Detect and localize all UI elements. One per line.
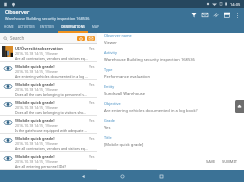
staticText: 2016-10-18 14:15, 1Viewer	[15, 105, 59, 110]
staticText: Viewer	[104, 40, 117, 46]
staticText: 2016-10-18 14:15, 1Viewer	[15, 123, 59, 128]
staticText: [Mobile quick grade]	[104, 142, 144, 148]
staticText: 2016-10-18 14:15, 1Viewer	[15, 159, 59, 164]
button[interactable]: [Mobile quick grade]	[0, 62, 97, 80]
staticText: Yes	[89, 82, 95, 87]
staticText: 14:05	[230, 2, 241, 7]
button[interactable]: OBSERVATIONS	[58, 21, 88, 33]
button[interactable]: Archive	[221, 9, 232, 20]
staticText: Are entering vehicles documented in a lo…	[104, 108, 198, 114]
button[interactable]: HOME	[0, 21, 17, 33]
staticText: Yes	[89, 46, 95, 51]
staticText: 2016-10-18 14:15, 1Viewer	[15, 141, 59, 146]
staticText: Warehouse Building security inspection 1…	[104, 57, 195, 63]
button[interactable]: ACTIVITIES	[17, 21, 35, 33]
staticText: Grade	[104, 118, 115, 123]
button[interactable]: Attachments	[210, 9, 221, 20]
button[interactable]: SAVE	[203, 157, 219, 166]
button[interactable]: MAP	[88, 21, 104, 33]
button[interactable]: ENTITIES	[35, 21, 58, 33]
staticText: Activity	[104, 50, 117, 55]
staticText: Are all contractors, vendors and visitor…	[15, 146, 88, 151]
staticText: UI/Översiktsobservation	[15, 46, 63, 51]
staticText: Are all entering personnel IDd?	[15, 164, 67, 169]
button[interactable]: [Mobile quick grade]	[0, 98, 97, 116]
button[interactable]: New message	[87, 36, 95, 41]
button[interactable]: [Mobile quick grade]	[0, 116, 97, 134]
staticText: 2016-10-18 14:15, 1Viewer	[15, 69, 59, 74]
staticText: 2016-10-18 14:15, 1Viewer	[15, 51, 59, 56]
button[interactable]: UI/Översiktsobservation	[0, 44, 97, 62]
staticText: [Mobile quick grade]	[15, 118, 55, 123]
staticText: Yes	[89, 136, 95, 141]
staticText: Does all the cars belonging to personnel…	[15, 92, 88, 97]
staticText: MAP	[92, 25, 100, 29]
staticText: Are entering vehicles documented in a lo…	[15, 74, 88, 79]
button[interactable]: [Mobile quick grade]	[0, 134, 97, 152]
staticText: [Mobile quick grade]	[15, 64, 55, 69]
staticText: [Mobile quick grade]	[15, 154, 55, 159]
button[interactable]: Filter	[188, 9, 199, 20]
staticText: 2016-10-18 14:15, 1Viewer	[15, 87, 59, 92]
staticText: OBSERVATIONS	[61, 25, 85, 29]
button[interactable]: Messages	[199, 9, 210, 20]
staticText: Objective	[104, 101, 121, 106]
button[interactable]: [Mobile quick grade]	[0, 80, 97, 98]
staticText: Yes	[89, 118, 95, 123]
button[interactable]: More options	[232, 10, 242, 20]
button[interactable]: Back	[64, 170, 103, 182]
staticText: Title	[104, 135, 112, 140]
staticText: Are all contractors, vendors and visitor…	[15, 56, 88, 61]
staticText: [Mobile quick grade]	[15, 100, 55, 105]
staticText: Search	[10, 35, 25, 41]
staticText: Yes	[104, 125, 111, 131]
button[interactable]: Voice search	[77, 36, 85, 41]
staticText: HOME	[4, 25, 14, 29]
staticText: Type	[104, 67, 113, 72]
staticText: Is the gatehouse equipped with adequate …	[15, 128, 88, 133]
button[interactable]: SUBMIT	[219, 157, 241, 166]
staticText: Yes	[89, 100, 95, 105]
button[interactable]: Open side panel	[235, 100, 244, 113]
staticText: Entity	[104, 84, 115, 89]
staticText: [Mobile quick grade]	[15, 136, 55, 141]
staticText: Sundsvall Warehouse	[104, 91, 146, 97]
staticText: Warehouse Building security inspection 1…	[5, 16, 90, 21]
staticText: Does all the cars belonging to visitors …	[15, 110, 88, 115]
staticText: Yes	[89, 64, 95, 69]
button[interactable]: [Mobile quick grade]	[0, 152, 97, 170]
staticText: ENTITIES	[40, 25, 54, 29]
staticText: Observer	[5, 8, 30, 16]
button[interactable]: Recents	[142, 170, 181, 182]
staticText: ACTIVITIES	[18, 25, 35, 29]
staticText: Yes	[89, 154, 95, 159]
staticText: Performance evaluation	[104, 74, 151, 80]
staticText: SAVE	[206, 159, 216, 164]
button[interactable]: Home	[103, 170, 142, 182]
staticText: Observer name	[104, 33, 132, 38]
staticText: SUBMIT	[222, 159, 238, 164]
staticText: [Mobile quick grade]	[15, 82, 55, 87]
